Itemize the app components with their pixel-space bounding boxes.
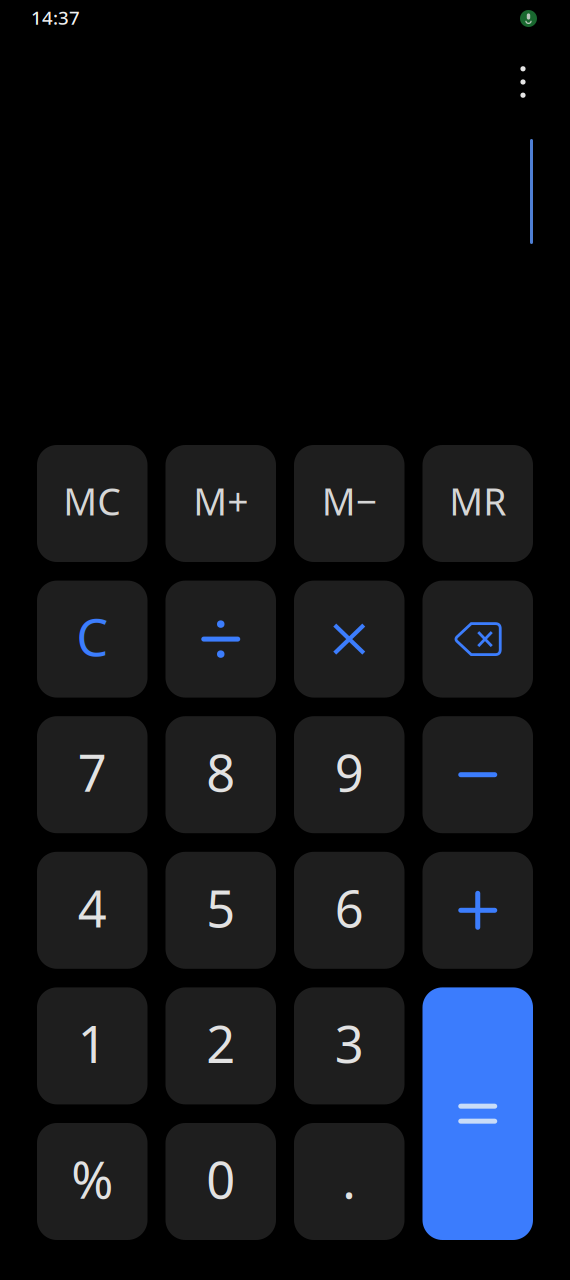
staticText: 9 <box>335 739 364 806</box>
staticText: 0 <box>206 1145 235 1213</box>
button[interactable]: C <box>37 581 147 698</box>
staticText: M+ <box>193 476 248 526</box>
button[interactable]: MC <box>37 445 147 562</box>
staticText: C <box>76 603 108 670</box>
staticText: 5 <box>206 874 235 941</box>
button[interactable]: Backspace <box>422 581 533 698</box>
staticText: 4 <box>78 874 107 941</box>
button[interactable]: 8 <box>165 716 276 833</box>
button[interactable]: Divide <box>165 581 276 698</box>
button[interactable]: More options <box>500 59 546 105</box>
button[interactable]: 2 <box>165 987 276 1104</box>
button[interactable]: M− <box>294 445 404 562</box>
button[interactable]: 9 <box>294 716 404 833</box>
staticText: 6 <box>335 874 364 941</box>
staticText: MR <box>449 476 506 526</box>
button[interactable]: 1 <box>37 987 147 1104</box>
button[interactable]: 7 <box>37 716 147 833</box>
button[interactable]: % <box>37 1123 147 1240</box>
button[interactable]: MR <box>422 445 533 562</box>
button[interactable]: Minus <box>422 716 533 833</box>
button[interactable]: 4 <box>37 852 147 969</box>
button[interactable]: 3 <box>294 987 404 1104</box>
staticText: 8 <box>206 739 235 806</box>
staticText: . <box>342 1145 356 1213</box>
staticText: 14:37 <box>31 5 80 30</box>
button[interactable]: . <box>294 1123 404 1240</box>
staticText: 2 <box>206 1010 235 1077</box>
button[interactable]: 5 <box>165 852 276 969</box>
staticText: 7 <box>78 739 107 806</box>
staticText: M− <box>322 476 377 526</box>
button[interactable]: Plus <box>422 852 533 969</box>
staticText: MC <box>63 476 121 526</box>
staticText: 1 <box>78 1010 107 1077</box>
staticText: % <box>71 1145 113 1213</box>
button[interactable]: 0 <box>165 1123 276 1240</box>
button[interactable]: 6 <box>294 852 404 969</box>
button[interactable]: M+ <box>165 445 276 562</box>
button[interactable]: Multiply <box>294 581 404 698</box>
staticText: 3 <box>335 1010 364 1077</box>
button[interactable]: Equals <box>422 987 533 1240</box>
